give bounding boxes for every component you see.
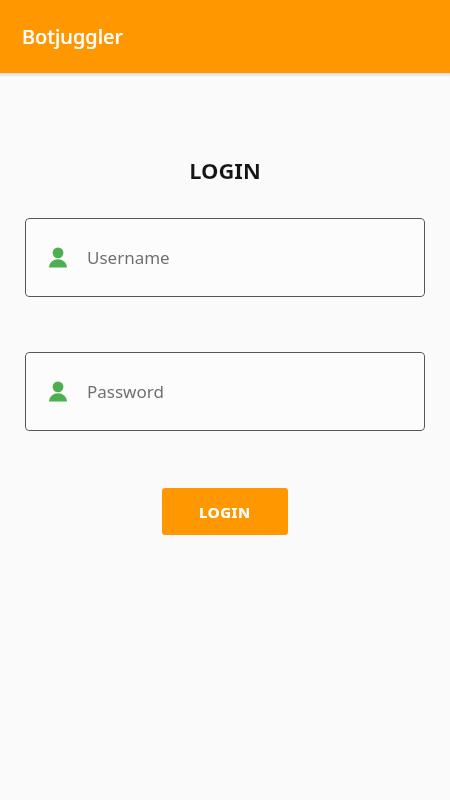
staticText: Botjuggler (22, 23, 124, 50)
staticText: Username (87, 246, 170, 269)
button[interactable]: LOGIN (162, 488, 288, 535)
staticText: Password (87, 380, 164, 403)
button[interactable]: Account (25, 218, 425, 297)
staticText: LOGIN (189, 155, 261, 185)
button[interactable]: Account (25, 352, 425, 431)
other: Account (47, 247, 69, 269)
staticText: LOGIN (199, 502, 251, 522)
other: Account (47, 381, 69, 403)
